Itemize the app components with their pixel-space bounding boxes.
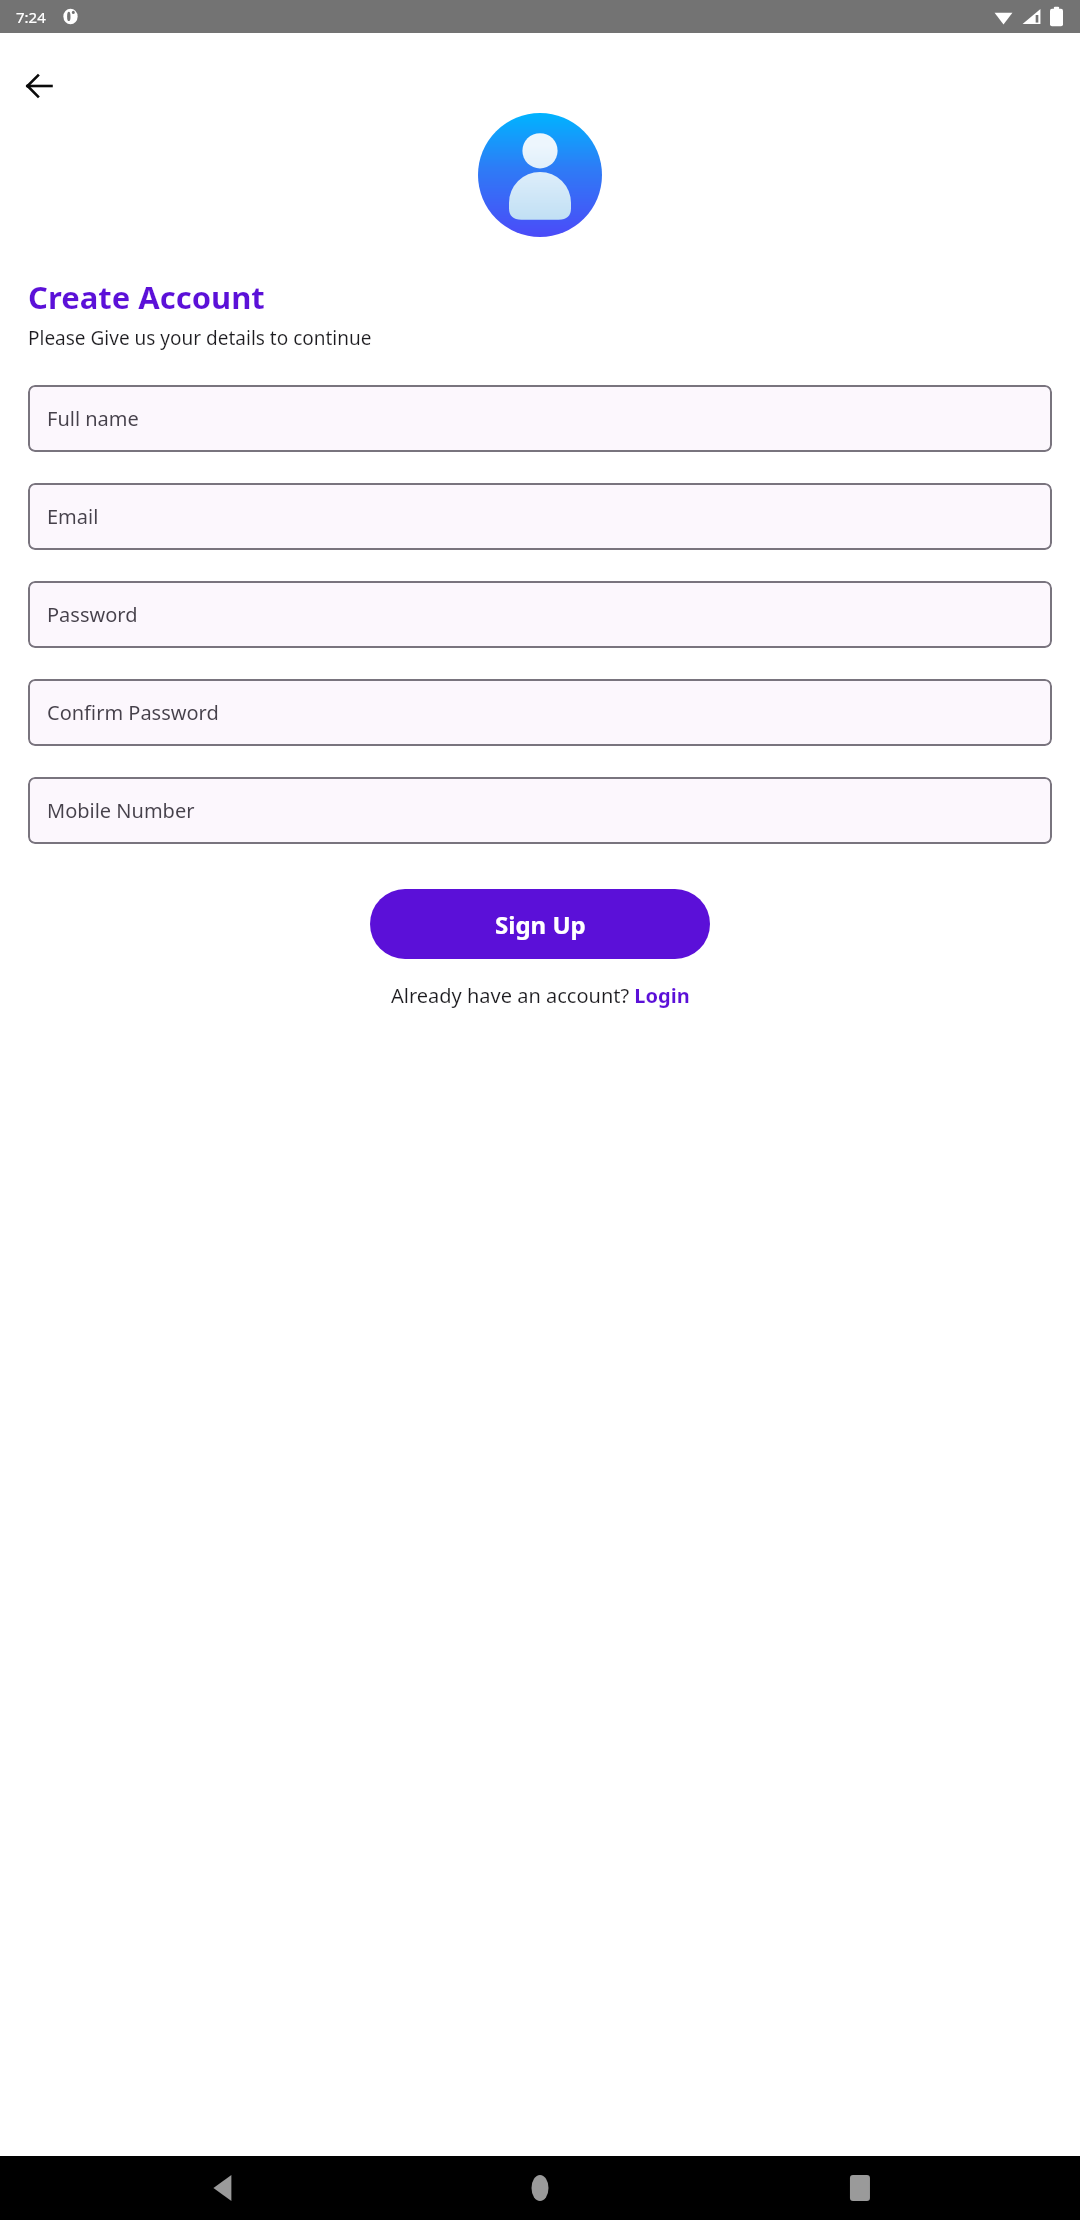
button[interactable]: Password (28, 581, 1052, 648)
staticText: Please Give us your details to continue (28, 325, 372, 351)
staticText: Password (47, 601, 138, 628)
staticText: Mobile Number (47, 797, 195, 824)
button[interactable]: Mobile Number (28, 777, 1052, 844)
staticText: Create Account (28, 276, 265, 318)
staticText: Already have an account? Login (391, 982, 690, 1009)
button[interactable]: Sign Up (370, 889, 710, 959)
staticText: Confirm Password (47, 699, 219, 726)
button[interactable]: Email (28, 483, 1052, 550)
staticText: 7:24 (16, 7, 46, 27)
staticText: Email (47, 503, 99, 530)
button[interactable]: Back (14, 61, 64, 111)
staticText: Sign Up (495, 908, 586, 941)
button[interactable]: Confirm Password (28, 679, 1052, 746)
button[interactable]: Full name (28, 385, 1052, 452)
staticText: Full name (47, 405, 139, 432)
button[interactable]: Already have an account? Login (391, 982, 690, 1009)
